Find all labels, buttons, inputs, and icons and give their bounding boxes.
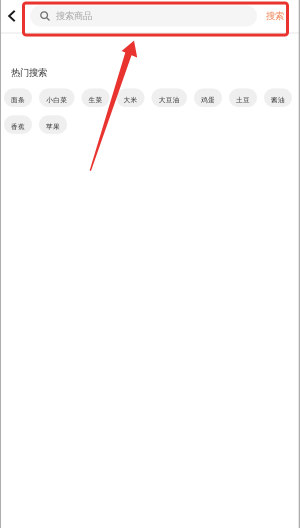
staticText: 苹果 (46, 123, 60, 131)
button[interactable]: 土豆 (229, 88, 257, 107)
staticText: 搜索商品 (56, 10, 92, 22)
button[interactable]: 鸡蛋 (194, 88, 222, 107)
staticText: 土豆 (236, 96, 250, 104)
button[interactable]: 香蕉 (4, 115, 32, 134)
button[interactable]: 生菜 (81, 88, 109, 107)
button[interactable]: 大米 (116, 88, 144, 107)
button[interactable]: 小白菜 (39, 88, 74, 107)
staticText: 大豆油 (159, 96, 180, 104)
staticText: 鸡蛋 (201, 96, 215, 104)
staticText: 大米 (123, 96, 137, 104)
staticText: 面条 (11, 96, 25, 104)
button[interactable]: 搜索商品 (30, 5, 257, 26)
button[interactable]: Back (8, 0, 30, 32)
staticText: 生菜 (88, 96, 102, 104)
staticText: 搜索 (266, 10, 284, 22)
button[interactable]: 面条 (4, 88, 32, 107)
staticText: 香蕉 (11, 123, 25, 131)
staticText: 小白菜 (46, 96, 67, 104)
staticText: 热门搜索 (11, 67, 47, 78)
button[interactable]: 大豆油 (151, 88, 187, 107)
staticText: 酱油 (271, 96, 285, 104)
button[interactable]: 酱油 (264, 88, 292, 107)
button[interactable]: 苹果 (39, 115, 67, 134)
button[interactable]: 搜索 (257, 0, 293, 32)
